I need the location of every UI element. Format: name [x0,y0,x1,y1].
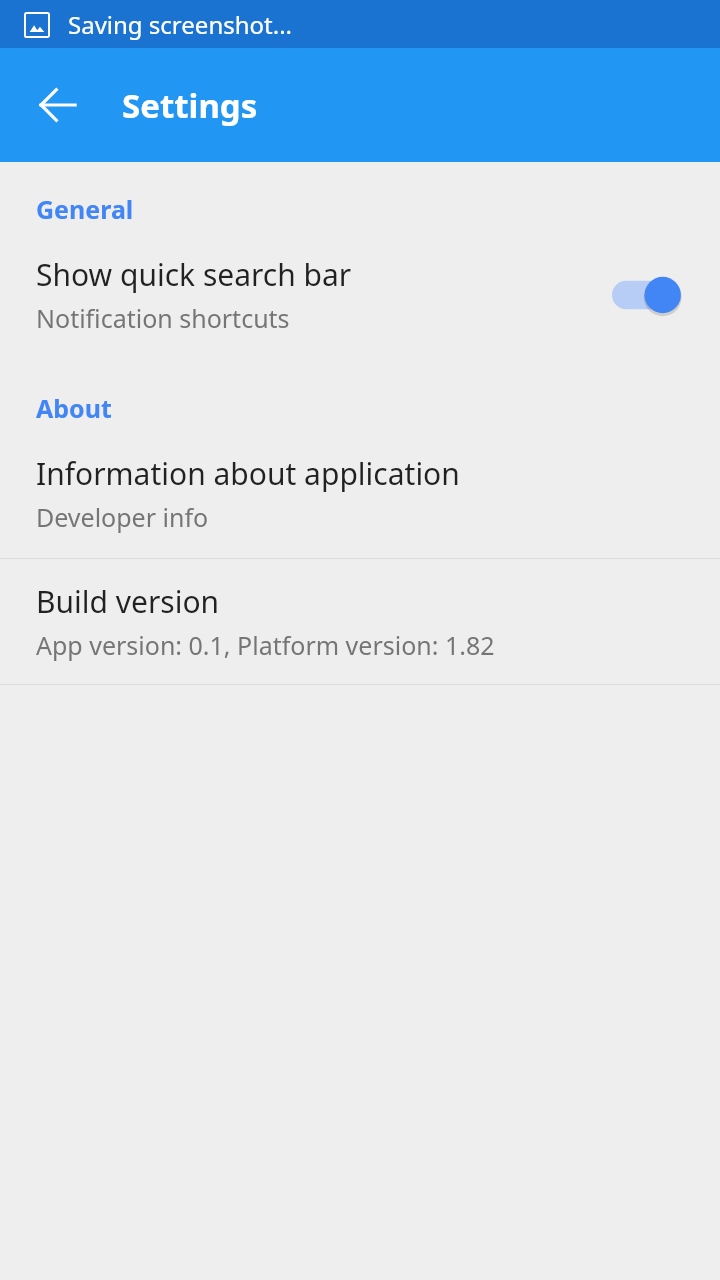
staticText: Build version [36,581,220,622]
staticText: General [36,192,134,226]
staticText: Saving screenshot... [68,8,293,41]
button[interactable]: Build version [0,581,720,662]
staticText: Notification shortcuts [36,301,290,335]
staticText: About [36,391,112,425]
button[interactable]: Back [24,71,92,139]
button[interactable]: Information about application [0,453,720,534]
staticText: Show quick search bar [36,254,352,295]
staticText: Information about application [36,453,460,494]
staticText: Settings [122,83,258,128]
button[interactable] [612,269,684,321]
button[interactable]: Show quick search bar [0,254,720,335]
staticText: Developer info [36,500,209,534]
staticText: App version: 0.1, Platform version: 1.82 [36,628,495,662]
